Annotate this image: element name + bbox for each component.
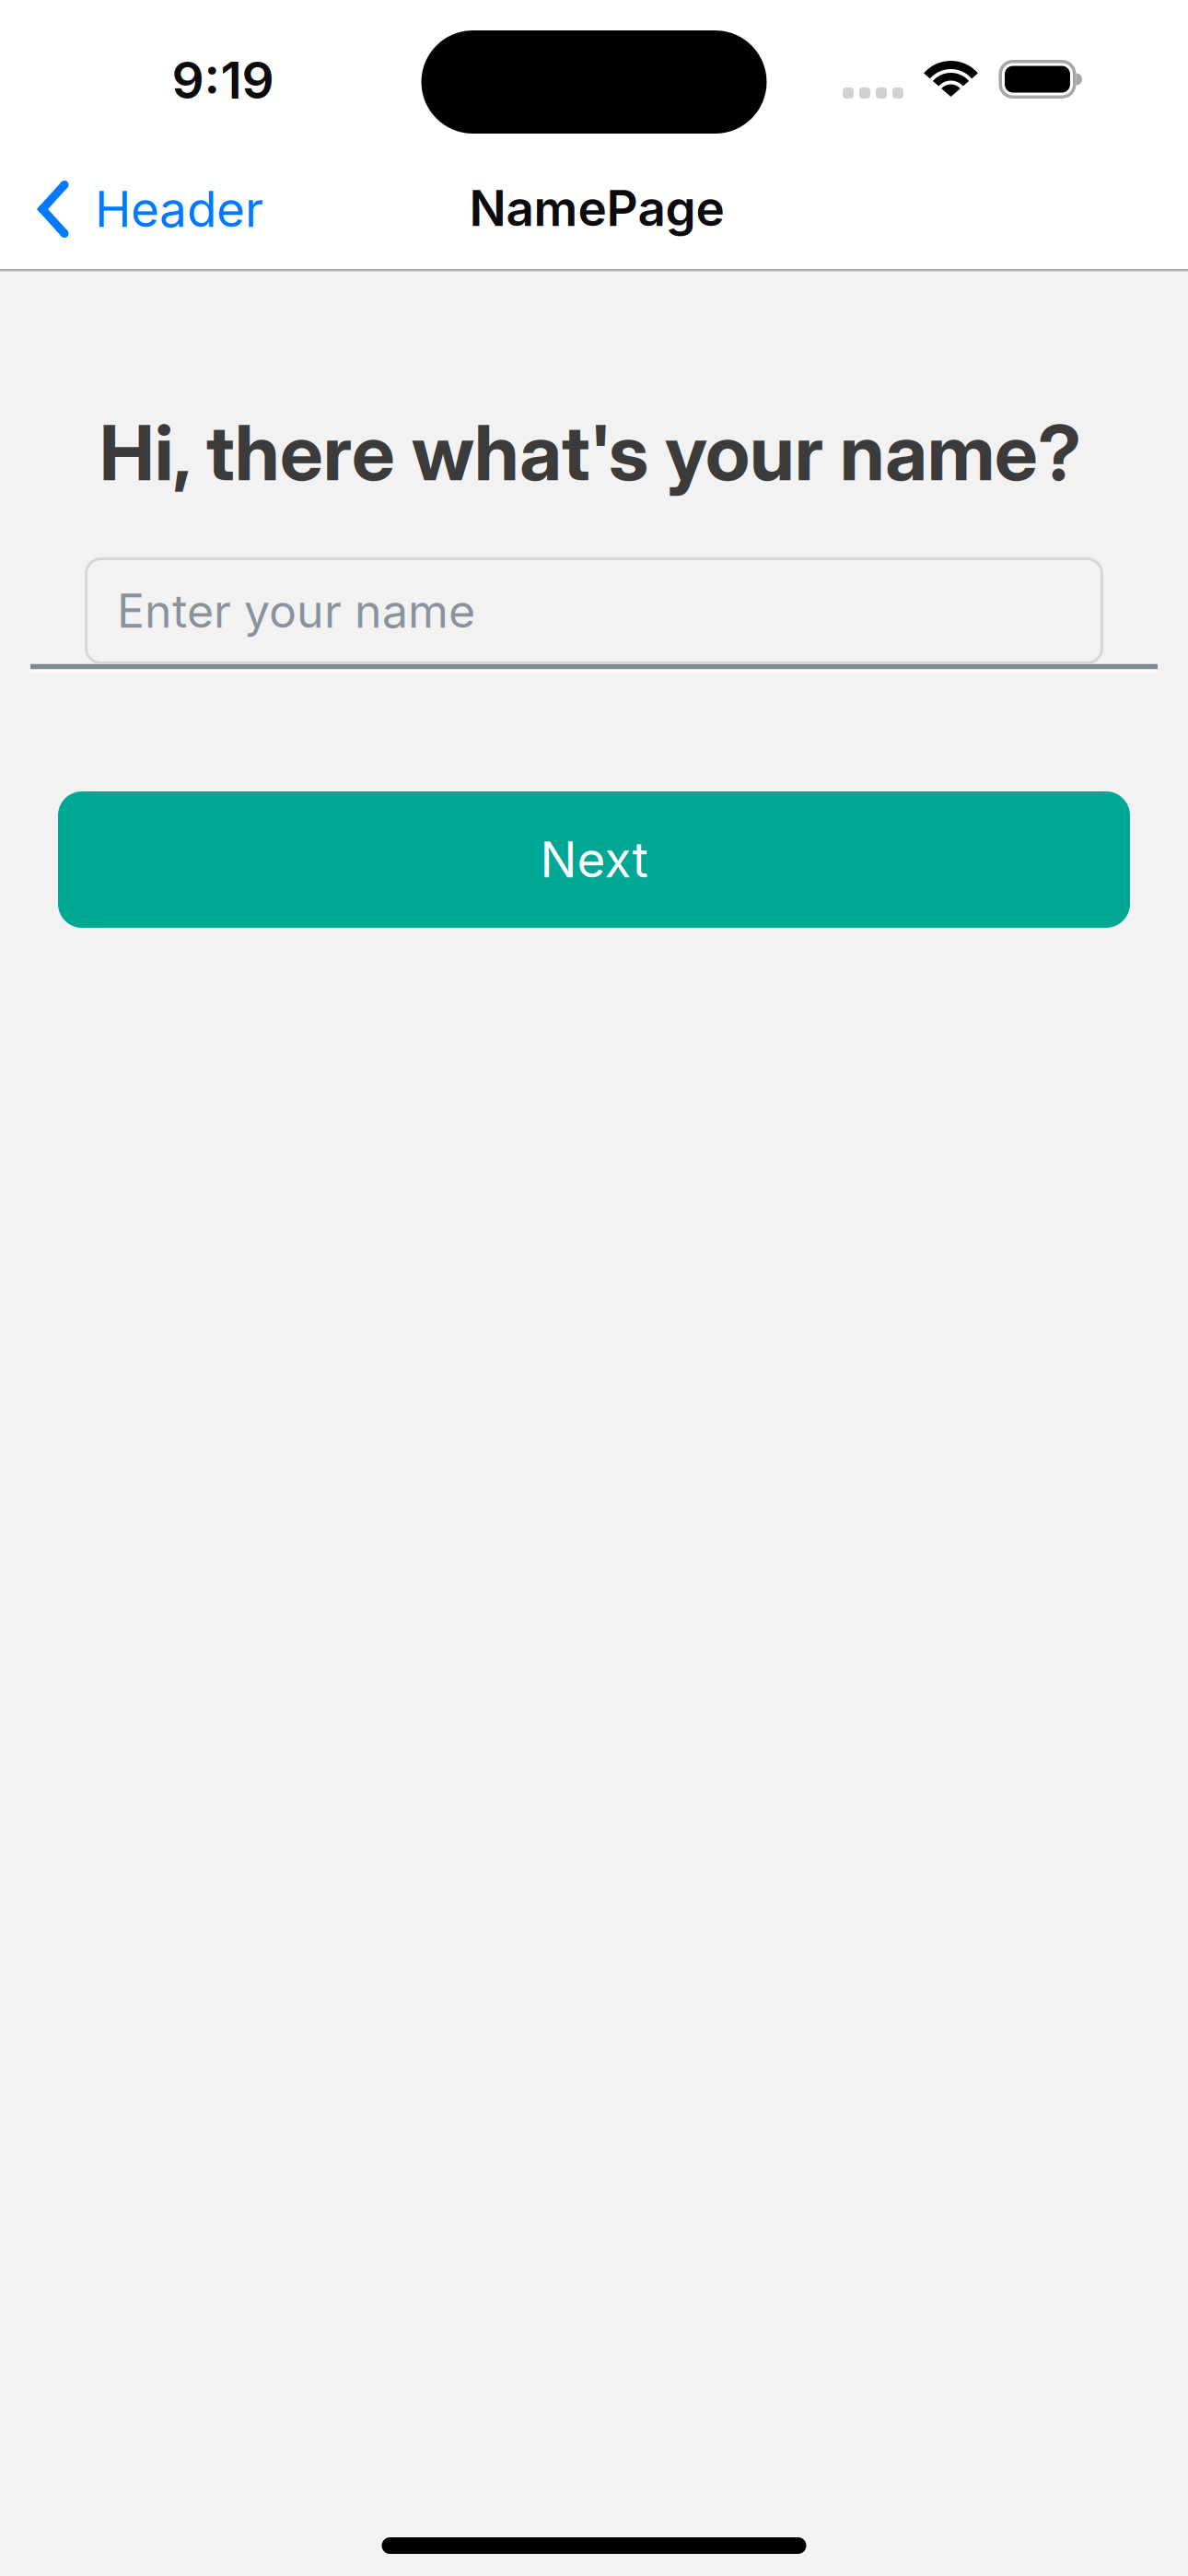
button[interactable]: Header: [42, 180, 263, 239]
staticText: Next: [540, 830, 648, 889]
textField[interactable]: Enter your name: [85, 557, 1103, 664]
staticText: NamePage: [469, 179, 724, 238]
staticText: Hi, there what's your name?: [99, 406, 1081, 499]
staticText: Enter your name: [117, 583, 475, 639]
staticText: 9:19: [172, 49, 274, 111]
button[interactable]: Next: [58, 791, 1130, 928]
staticText: Header: [95, 180, 263, 239]
